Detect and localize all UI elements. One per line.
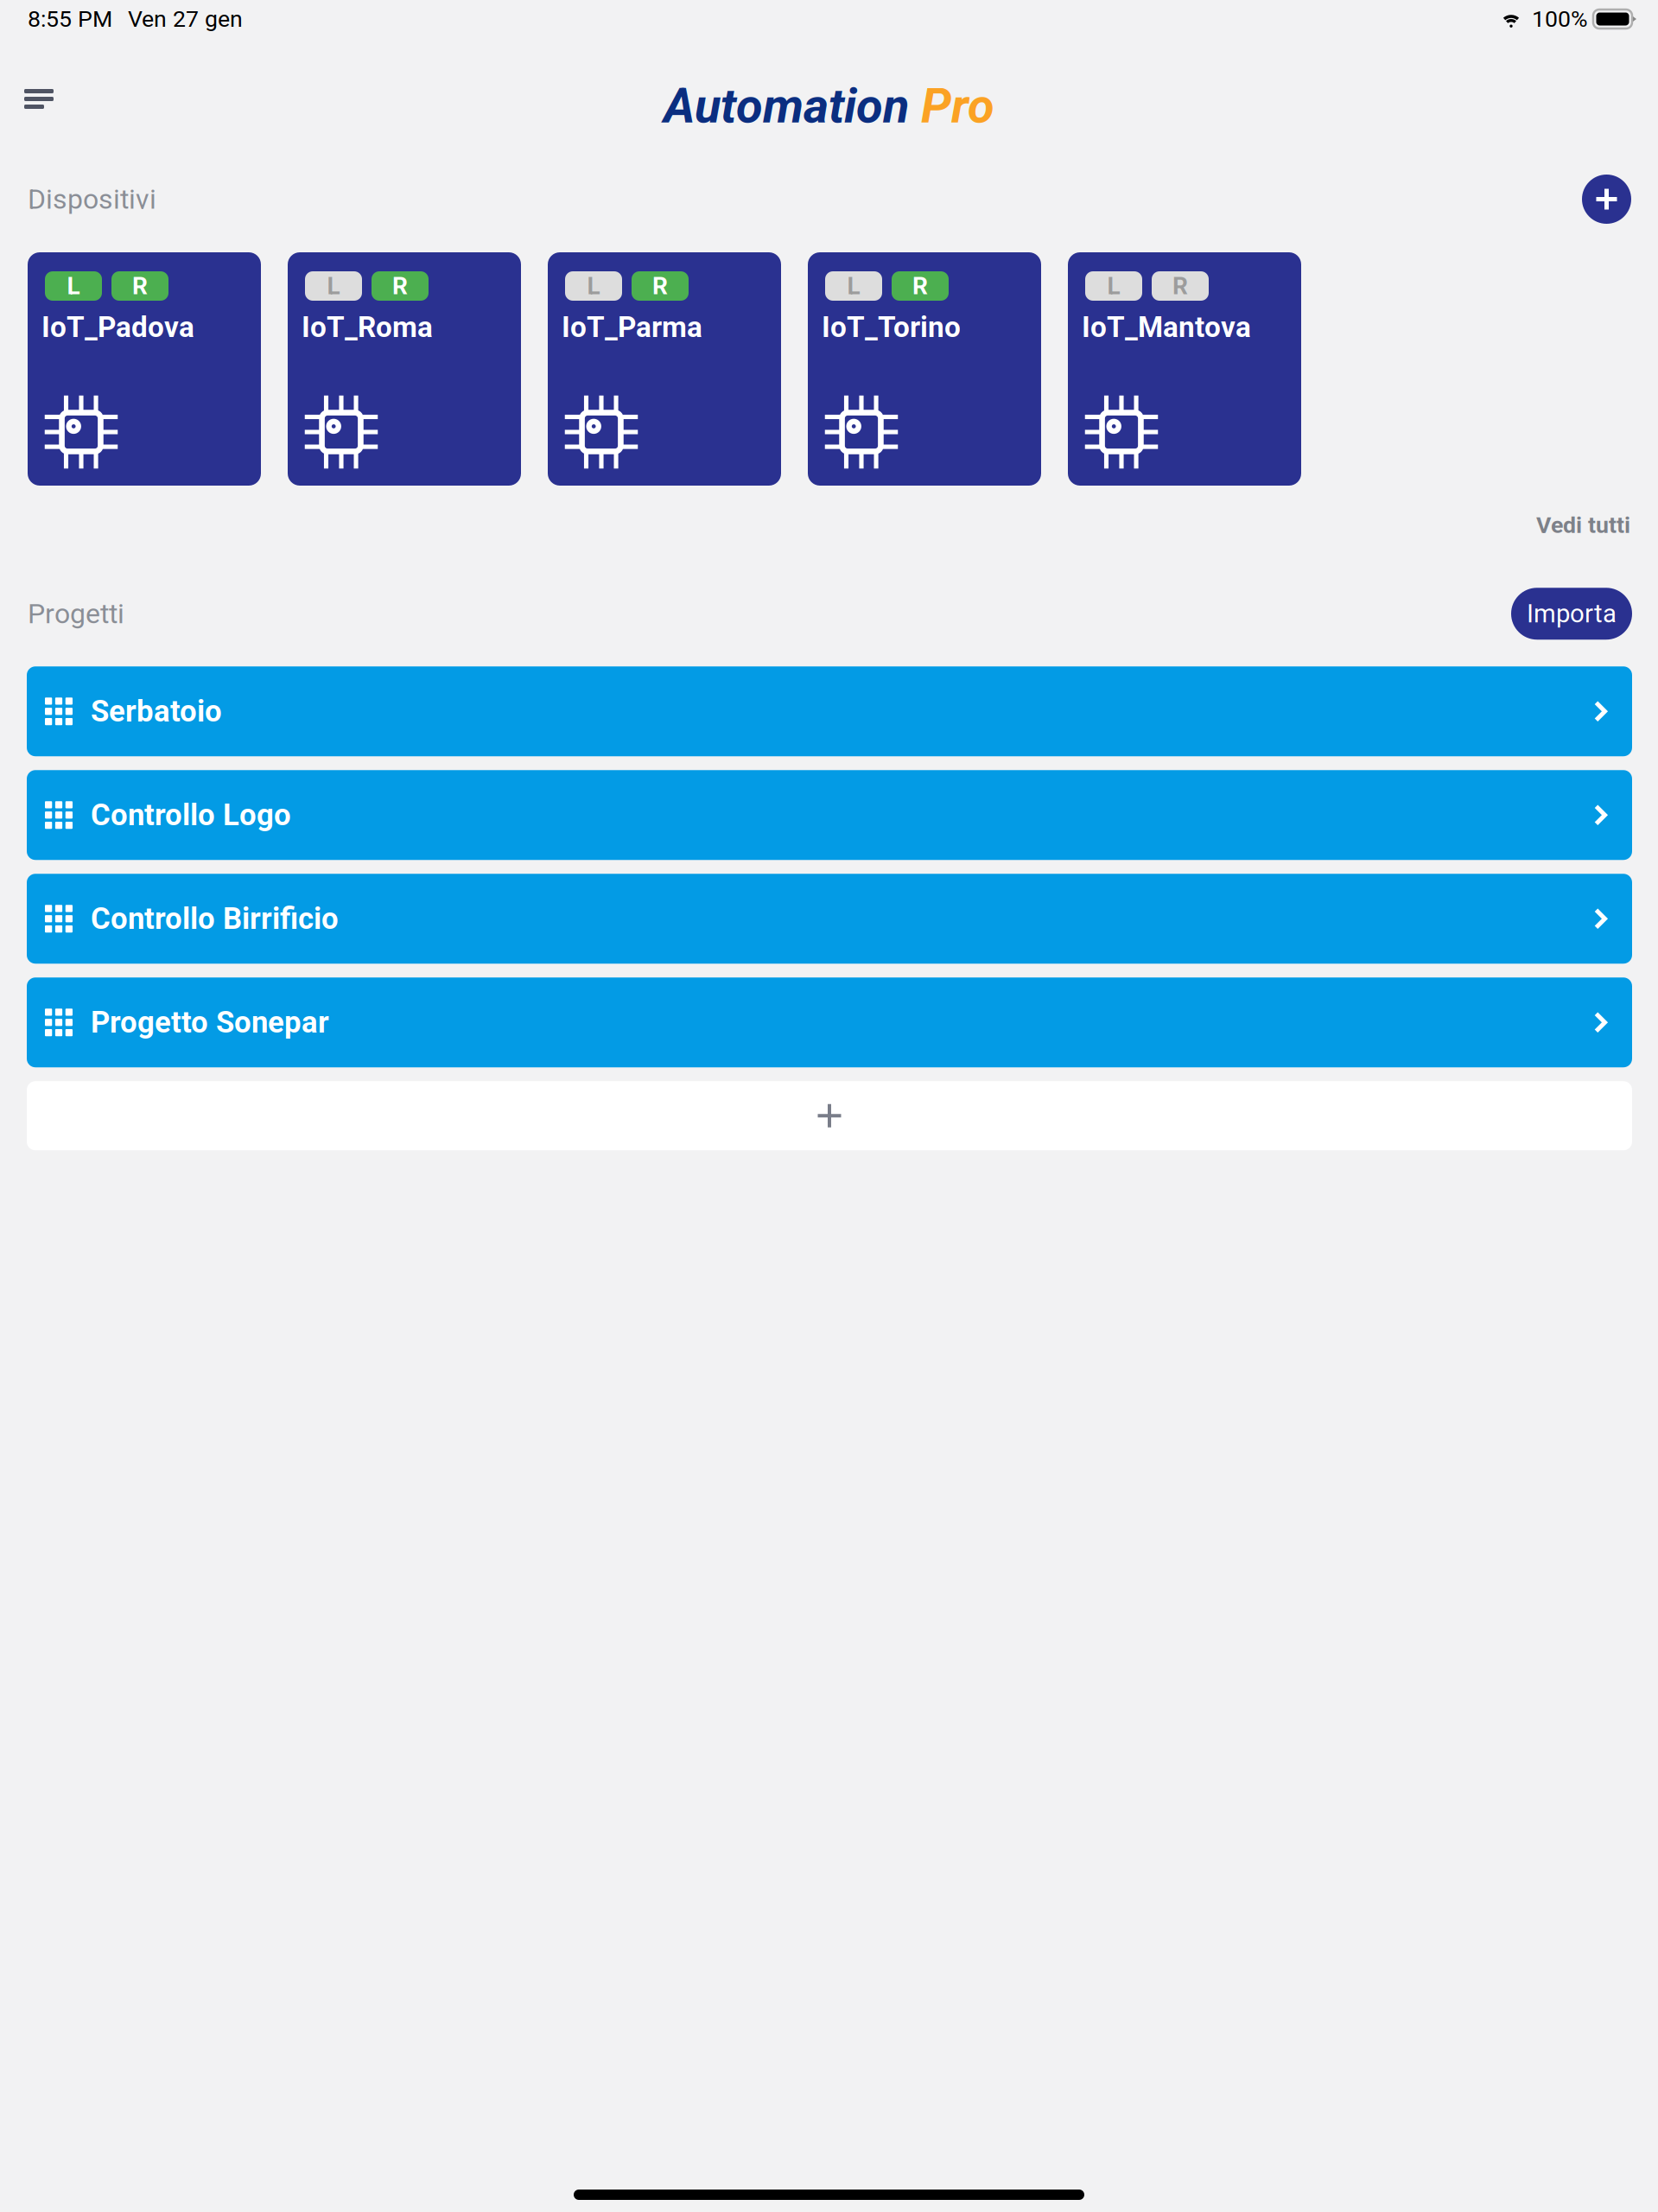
button[interactable]: Add device (1582, 175, 1631, 224)
staticText: L (67, 272, 80, 300)
staticText: L (1107, 272, 1120, 300)
staticText: IoT_Padova (41, 310, 194, 344)
staticText: Serbatoio (91, 694, 222, 729)
button[interactable]: Progetto Sonepar (27, 978, 1632, 1067)
button[interactable]: Controllo Birrificio (27, 874, 1632, 964)
staticText: R (652, 272, 668, 300)
staticText: Progetto Sonepar (91, 1005, 329, 1040)
button[interactable]: Vedi tutti (1536, 512, 1630, 539)
staticText: Vedi tutti (1536, 512, 1630, 539)
button[interactable]: Importa (1511, 588, 1632, 640)
button[interactable]: L (28, 252, 261, 486)
staticText: Dispositivi (28, 183, 156, 215)
staticText: R (132, 272, 148, 300)
staticText: Automation (664, 78, 909, 134)
staticText: IoT_Torino (822, 310, 961, 344)
button[interactable]: L (1068, 252, 1301, 486)
staticText: R (392, 272, 408, 300)
staticText: IoT_Parma (562, 310, 702, 344)
button[interactable]: Add project (27, 1081, 1632, 1150)
staticText: IoT_Mantova (1082, 310, 1251, 344)
button[interactable]: Menu (24, 69, 69, 129)
staticText: 100% (1532, 6, 1588, 33)
staticText: Pro (909, 78, 994, 134)
staticText: Controllo Birrificio (91, 901, 339, 936)
staticText: Importa (1527, 599, 1617, 629)
button[interactable]: L (548, 252, 781, 486)
staticText: IoT_Roma (302, 310, 433, 344)
button[interactable]: Controllo Logo (27, 770, 1632, 860)
button[interactable]: L (288, 252, 521, 486)
staticText: L (587, 272, 600, 300)
staticText: L (327, 272, 340, 300)
staticText: Ven 27 gen (128, 6, 243, 33)
staticText: Progetti (28, 597, 124, 630)
staticText: R (912, 272, 928, 300)
staticText: 8:55 PM (28, 6, 112, 33)
button[interactable]: L (808, 252, 1041, 486)
staticText: R (1172, 272, 1188, 300)
staticText: L (847, 272, 860, 300)
button[interactable]: Serbatoio (27, 666, 1632, 756)
staticText: Controllo Logo (91, 797, 291, 833)
